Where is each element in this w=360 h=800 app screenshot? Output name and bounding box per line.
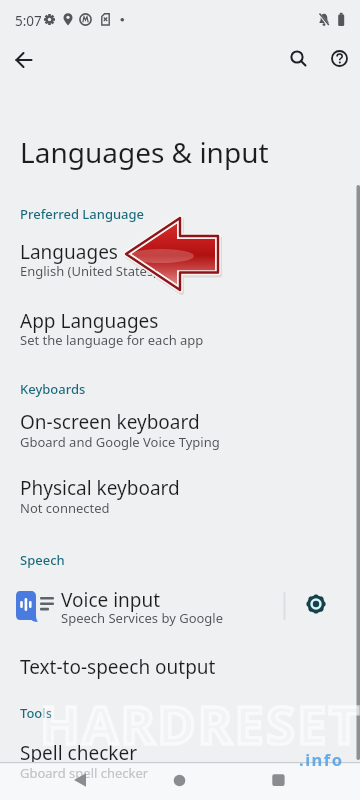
button[interactable] <box>324 42 356 74</box>
button[interactable]: Spell checker <box>0 736 360 770</box>
staticText: Gboard spell checker <box>20 764 149 782</box>
button[interactable]: Text-to-speech output <box>0 648 360 682</box>
staticText: HARDRESET <box>40 688 360 759</box>
staticText: App Languages <box>20 308 159 334</box>
button[interactable] <box>296 584 336 624</box>
staticText: Physical keyboard <box>20 475 180 501</box>
staticText: Not connected <box>20 499 110 517</box>
staticText: Speech <box>20 551 65 569</box>
button[interactable] <box>250 764 298 798</box>
button[interactable]: Physical keyboard <box>0 472 360 526</box>
button[interactable] <box>56 764 104 798</box>
button[interactable] <box>8 44 40 76</box>
button[interactable]: Voice input <box>0 582 290 630</box>
staticText: Spell checker <box>20 740 137 766</box>
staticText: Preferred Language <box>20 205 145 223</box>
staticText: Languages & input <box>20 133 269 171</box>
staticText: Text-to-speech output <box>20 654 216 680</box>
staticText: Set the language for each app <box>20 331 204 349</box>
button[interactable] <box>282 42 314 74</box>
button[interactable]: App Languages <box>0 304 360 358</box>
staticText: Languages <box>20 239 118 265</box>
staticText: .info <box>299 748 344 770</box>
staticText: On-screen keyboard <box>20 409 200 435</box>
staticText: HARDRESET <box>40 688 360 759</box>
staticText: Voice input <box>61 587 161 613</box>
staticText: Gboard and Google Voice Typing <box>20 433 220 451</box>
staticText: Keyboards <box>20 380 86 398</box>
staticText: 5:07 <box>15 12 42 30</box>
staticText: Tools <box>20 704 53 722</box>
button[interactable] <box>156 764 204 798</box>
button[interactable]: Languages <box>0 236 360 290</box>
staticText: Speech Services by Google <box>61 609 224 627</box>
button[interactable]: On-screen keyboard <box>0 406 360 460</box>
staticText: English (United States) <box>20 262 158 280</box>
